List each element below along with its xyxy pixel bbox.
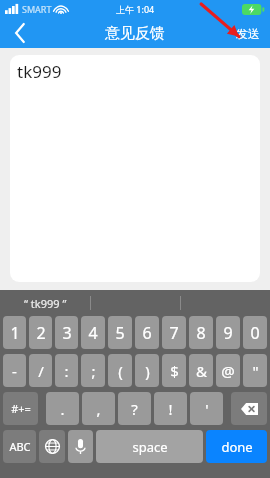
staticText: 9 — [223, 322, 233, 344]
staticText: space — [132, 438, 168, 456]
button[interactable]: Change keyboard language — [39, 430, 65, 463]
button[interactable]: ! — [154, 392, 187, 425]
staticText: 5 — [115, 322, 125, 344]
button[interactable]: ABC — [3, 430, 36, 463]
staticText: / — [38, 361, 44, 381]
staticText: 3 — [62, 322, 72, 344]
button[interactable]: 2 — [29, 316, 52, 349]
staticText: 1 — [10, 322, 20, 344]
button[interactable]: “ tk999 ” — [0, 290, 90, 316]
staticText: 7 — [169, 322, 179, 344]
button[interactable]: ) — [135, 354, 159, 387]
staticText: @ — [221, 361, 235, 381]
button[interactable]: Backspace — [231, 392, 267, 425]
button[interactable]: 9 — [216, 316, 240, 349]
staticText: ; — [91, 361, 96, 381]
staticText: 意见反馈 — [105, 24, 165, 43]
button[interactable]: 发送 — [226, 18, 270, 48]
staticText: 8 — [196, 322, 206, 344]
button[interactable]: Voice input — [68, 430, 93, 463]
button[interactable]: tk999 — [10, 55, 260, 282]
button[interactable]: 5 — [108, 316, 132, 349]
staticText: 0 — [250, 322, 260, 344]
staticText: ABC — [9, 439, 31, 454]
button[interactable]: ( — [108, 354, 132, 387]
staticText: tk999 — [17, 60, 62, 83]
staticText: 发送 — [236, 26, 260, 41]
staticText: done — [221, 438, 253, 456]
button[interactable]: 4 — [81, 316, 105, 349]
staticText: : — [64, 361, 69, 381]
staticText: , — [96, 399, 101, 419]
button[interactable]: & — [189, 354, 213, 387]
button[interactable]: 8 — [189, 316, 213, 349]
button[interactable]: ? — [118, 392, 151, 425]
staticText: “ tk999 ” — [24, 296, 67, 311]
staticText: ' — [205, 399, 209, 419]
staticText: 上午 1:04 — [116, 3, 155, 15]
staticText: ) — [145, 361, 150, 381]
button[interactable]: - — [3, 354, 26, 387]
button[interactable]: Back — [0, 18, 40, 48]
staticText: & — [196, 361, 207, 381]
button[interactable]: 3 — [55, 316, 78, 349]
button[interactable]: 1 — [3, 316, 26, 349]
staticText: 4 — [88, 322, 98, 344]
staticText: " — [252, 361, 259, 381]
button[interactable]: 6 — [135, 316, 159, 349]
button[interactable]: 0 — [243, 316, 267, 349]
button[interactable]: $ — [162, 354, 186, 387]
button[interactable]: / — [29, 354, 52, 387]
button[interactable]: ' — [190, 392, 223, 425]
staticText: ? — [131, 399, 138, 419]
staticText: SMART — [22, 3, 52, 15]
button[interactable]: @ — [216, 354, 240, 387]
button[interactable]: : — [55, 354, 78, 387]
staticText: - — [12, 361, 17, 381]
staticText: ! — [168, 399, 173, 419]
button[interactable]: , — [82, 392, 115, 425]
button[interactable]: #+= — [3, 392, 38, 425]
staticText: 2 — [36, 322, 46, 344]
staticText: ( — [118, 361, 123, 381]
button[interactable]: done — [206, 430, 267, 463]
button[interactable]: . — [46, 392, 79, 425]
staticText: . — [60, 399, 65, 419]
button[interactable]: " — [243, 354, 267, 387]
button[interactable]: ; — [81, 354, 105, 387]
button[interactable]: space — [96, 430, 203, 463]
staticText: 6 — [142, 322, 152, 344]
staticText: $ — [170, 361, 179, 381]
staticText: #+= — [11, 401, 31, 416]
button[interactable]: 7 — [162, 316, 186, 349]
